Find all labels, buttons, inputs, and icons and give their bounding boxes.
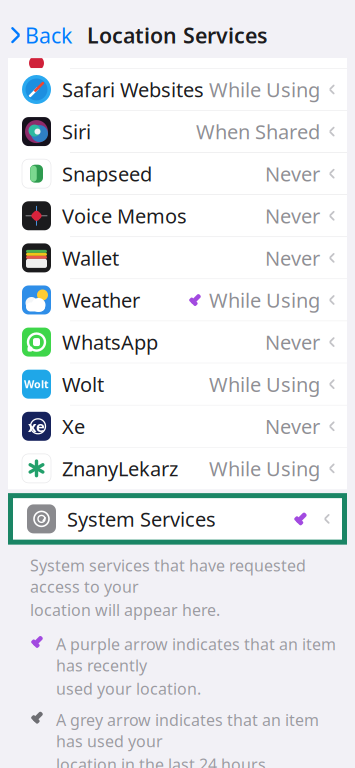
staticText: Snapseed [62,160,152,187]
button[interactable]: Wallet [8,237,347,279]
button[interactable]: xe [8,405,347,447]
staticText: used your location. [56,678,201,699]
staticText: Never [265,245,320,271]
staticText: While Using [209,371,320,397]
button[interactable]: Weather [8,279,347,321]
staticText: System services that have requested acce… [30,555,306,597]
staticText: While Using [209,455,320,482]
staticText: Back [25,21,72,49]
button[interactable]: Wolt [8,363,347,405]
staticText: Wolt [24,377,49,391]
button[interactable]: Snapseed [8,153,347,194]
staticText: Never [265,329,320,355]
staticText: Never [265,413,320,440]
button[interactable]: Siri [8,111,347,152]
staticText: Xe [62,413,85,440]
staticText: location will appear here. [30,599,220,620]
staticText: location in the last 24 hours. [56,754,270,768]
staticText: While Using [209,76,320,103]
staticText: A purple arrow indicates that an item ha… [56,633,336,676]
staticText: Siri [62,118,91,145]
staticText: Wallet [62,245,119,271]
button[interactable]: WhatsApp [8,321,347,363]
staticText: Location Services [87,21,268,49]
button[interactable]: Safari Websites [8,69,347,110]
staticText: Never [265,160,320,187]
staticText: Weather [62,287,140,313]
button[interactable]: Voice Memos [8,195,347,236]
staticText: A grey arrow indicates that an item has … [56,709,319,752]
staticText: Voice Memos [62,202,187,229]
staticText: ZnanyLekarz [62,455,178,482]
staticText: Wolt [62,371,104,397]
staticText: While Using [209,287,320,313]
button[interactable]: Back [0,15,72,55]
staticText: System Services [67,506,216,532]
staticText: WhatsApp [62,329,158,355]
button[interactable]: System Services [8,493,347,545]
staticText: Safari Websites [62,76,204,103]
button[interactable]: ZnanyLekarz [8,448,347,489]
staticText: When Shared [196,118,320,145]
staticText: Never [265,202,320,229]
staticText: xe [28,416,45,436]
